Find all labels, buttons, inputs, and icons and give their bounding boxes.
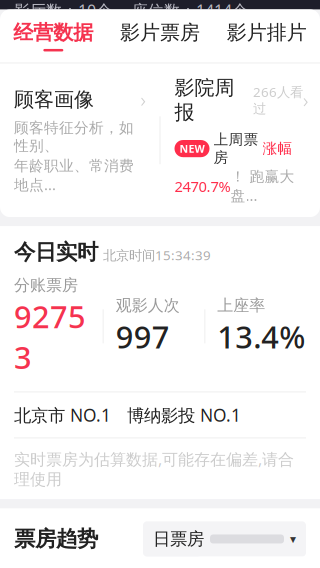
staticText: ›	[303, 87, 308, 113]
staticText: 北京时间15:34:39	[103, 246, 211, 264]
staticText: 顾客特征分析，如性别、	[14, 119, 134, 155]
staticText: 北京市 NO.1	[14, 403, 111, 426]
staticText: 票房趋势	[14, 526, 98, 552]
staticText: 顾客画像	[14, 87, 94, 112]
button[interactable]: 日票房	[143, 521, 306, 557]
staticText: 博纳影投 NO.1	[127, 403, 241, 426]
staticText: 分账票房	[14, 275, 78, 295]
button[interactable]: 影片排片	[213, 9, 320, 62]
staticText: 经营数据	[13, 20, 93, 45]
staticText: 实时票房为估算数据,可能存在偏差,请合理使用	[14, 448, 294, 489]
staticText: 涨幅	[262, 140, 292, 158]
staticText: NEW	[179, 141, 204, 156]
staticText: 997	[116, 316, 170, 357]
button[interactable]: 影片票房	[107, 9, 213, 62]
staticText: 13.4%	[217, 316, 305, 357]
staticText: ！ 跑赢大盘...	[230, 168, 294, 205]
staticText: 影厅数：10个 座位数：1414个	[14, 0, 248, 21]
staticText: 2470.7%	[174, 177, 230, 196]
button[interactable]: 顾客画像	[0, 86, 159, 194]
staticText: 今日实时	[14, 239, 98, 265]
staticText: ›	[140, 86, 145, 113]
staticText: 影片票房	[120, 20, 200, 45]
staticText: 日票房	[153, 528, 204, 550]
staticText: 上周票房	[213, 131, 258, 167]
staticText: ▾	[290, 532, 296, 546]
staticText: 年龄职业、常消费地点...	[14, 157, 134, 194]
staticText: 266人看过	[253, 83, 303, 117]
button[interactable]: 影院周报	[160, 75, 320, 205]
staticText: 观影人次	[116, 296, 180, 315]
staticText: 影院周报	[174, 75, 234, 124]
staticText: 上座率	[217, 296, 265, 315]
staticText: 影片排片	[227, 20, 307, 45]
staticText: 92753	[14, 296, 86, 377]
button[interactable]: 经营数据	[0, 9, 107, 62]
